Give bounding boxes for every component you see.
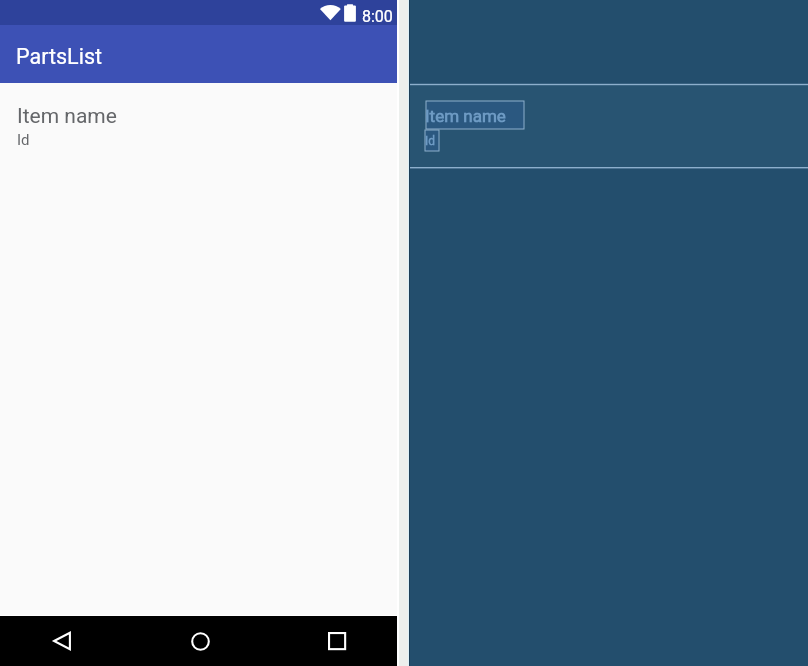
staticText: Item name bbox=[425, 106, 506, 126]
button[interactable]: Back bbox=[42, 616, 82, 666]
staticText: Item name bbox=[17, 104, 117, 129]
staticText: Id bbox=[17, 131, 30, 149]
button[interactable]: Recent apps bbox=[317, 616, 357, 666]
staticText: Id bbox=[425, 134, 436, 148]
button[interactable]: Item name bbox=[0, 83, 399, 167]
staticText: PartsList bbox=[16, 44, 103, 69]
staticText: 8:00 bbox=[362, 7, 393, 26]
button[interactable]: Home bbox=[180, 616, 220, 666]
